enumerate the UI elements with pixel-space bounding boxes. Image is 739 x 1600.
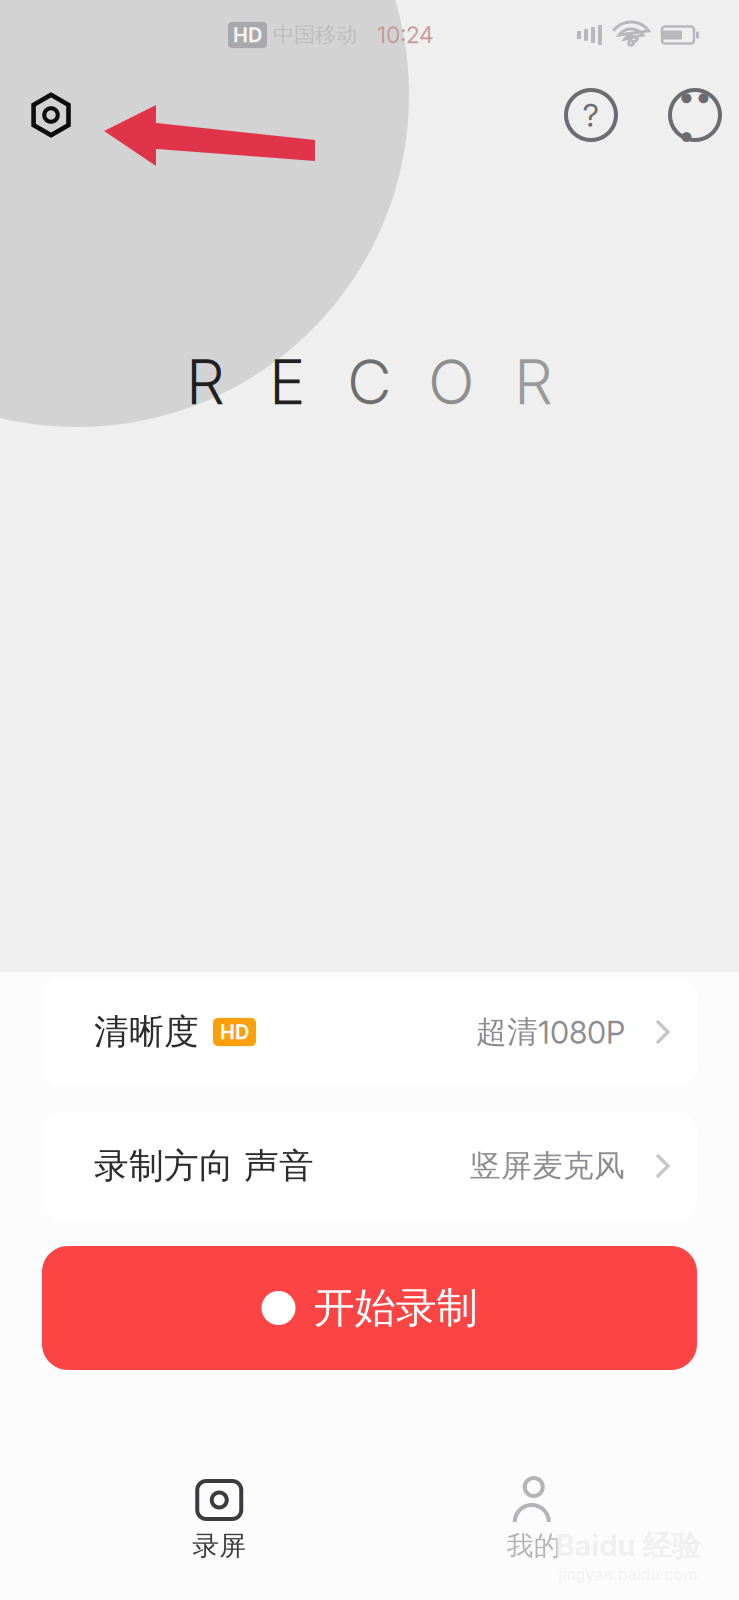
staticText: R (514, 345, 553, 419)
button[interactable]: More (656, 76, 734, 154)
button[interactable]: 清晰度 (42, 978, 697, 1086)
staticText: 我的 (507, 1529, 561, 1563)
staticText: 录屏 (192, 1529, 246, 1563)
button[interactable]: 录制方向 声音 (42, 1112, 697, 1220)
staticText: C (347, 345, 392, 419)
staticText: ••• (678, 76, 712, 154)
button[interactable]: Settings (12, 76, 90, 154)
staticText: 10:24 (377, 21, 434, 49)
button[interactable]: Help (552, 76, 630, 154)
staticText: 录制方向 声音 (94, 1144, 314, 1188)
staticText: HD (233, 23, 262, 47)
staticText: E (269, 345, 306, 419)
staticText: 开始录制 (313, 1282, 477, 1334)
staticText: 中国移动 (273, 22, 357, 48)
staticText: 竖屏麦克风 (470, 1147, 625, 1185)
button[interactable]: 开始录制 (42, 1246, 697, 1370)
staticText: 清晰度 (94, 1010, 199, 1054)
button[interactable]: 录屏 (62, 1478, 376, 1563)
staticText: ? (582, 96, 599, 134)
staticText: jingyan.baidu.com (558, 1565, 697, 1584)
staticText: R (186, 345, 225, 419)
button[interactable]: 我的 (376, 1478, 691, 1563)
staticText: O (428, 345, 475, 419)
staticText: 超清1080P (476, 1013, 625, 1051)
staticText: Baidu 经验 (555, 1527, 700, 1565)
staticText: HD (220, 1020, 249, 1044)
